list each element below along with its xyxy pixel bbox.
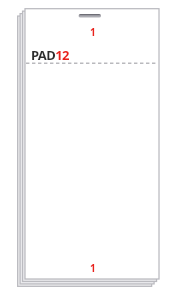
button[interactable]: Binder clip [78,13,102,19]
staticText: 1 [90,25,96,39]
button[interactable]: PAD12 [31,46,69,64]
staticText: 1 [90,261,96,275]
button[interactable]: Notepad sheet [25,9,159,279]
